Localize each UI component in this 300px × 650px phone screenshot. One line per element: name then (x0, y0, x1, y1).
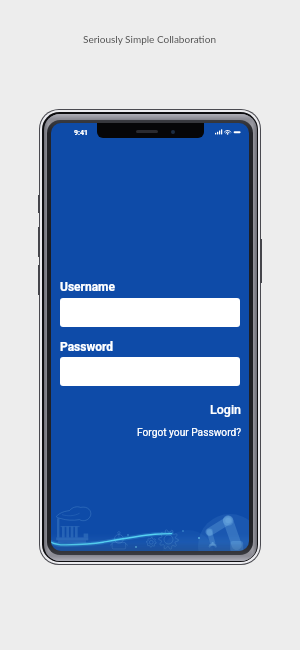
button[interactable]: Forgot your Password? (133, 424, 246, 442)
button[interactable]: Password field (60, 357, 240, 386)
staticText: 9:41 (74, 129, 89, 137)
staticText: Seriously Simple Collaboration (83, 33, 217, 45)
staticText: Login (210, 402, 242, 417)
staticText: Password (60, 340, 114, 354)
staticText: Username (60, 280, 115, 294)
button[interactable]: Username field (60, 298, 240, 327)
staticText: Forgot your Password? (137, 427, 242, 439)
button[interactable]: Login (206, 399, 246, 420)
